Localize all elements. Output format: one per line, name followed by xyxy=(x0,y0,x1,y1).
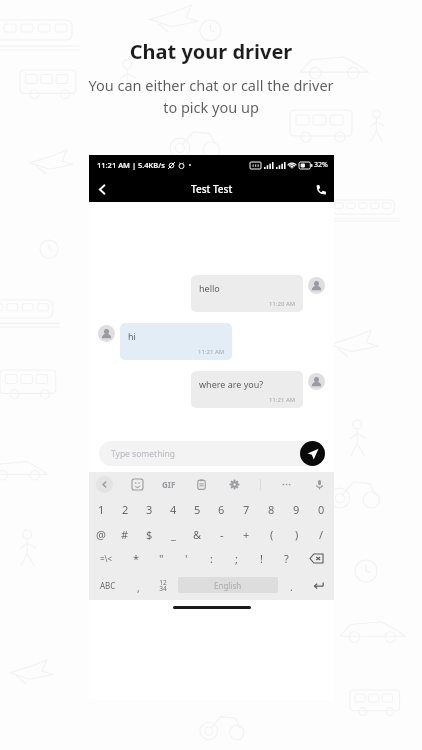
staticText: Chat your driver xyxy=(0,38,422,65)
staticText: # xyxy=(121,527,129,542)
button[interactable]: 4 xyxy=(161,496,185,522)
button[interactable]: # xyxy=(113,522,137,546)
button[interactable]: 1 xyxy=(89,496,113,522)
button[interactable]: : xyxy=(199,546,224,570)
staticText: ! xyxy=(260,551,263,566)
staticText: where are you? xyxy=(199,378,264,390)
staticText: " xyxy=(159,551,164,566)
button[interactable]: hi xyxy=(120,323,232,360)
button[interactable]: Clipboard xyxy=(194,477,209,492)
staticText: ( xyxy=(270,527,274,542)
staticText: ABC xyxy=(100,580,116,591)
staticText: Type something xyxy=(111,448,176,460)
staticText: ' xyxy=(185,551,188,566)
staticText: 11:20 AM xyxy=(269,300,296,308)
button[interactable]: ! xyxy=(249,546,274,570)
staticText: 9 xyxy=(293,502,300,517)
button[interactable]: _ xyxy=(161,522,185,546)
staticText: $ xyxy=(146,527,153,542)
staticText: + xyxy=(243,527,250,542)
staticText: hello xyxy=(199,282,220,294)
button[interactable]: * xyxy=(124,546,149,570)
button[interactable]: Collapse toolbar xyxy=(96,476,113,493)
staticText: , xyxy=(137,581,140,595)
button[interactable]: Stickers xyxy=(130,477,145,492)
button[interactable]: Call xyxy=(308,176,334,202)
staticText: & xyxy=(193,527,202,542)
button[interactable]: =\< xyxy=(89,546,124,570)
button[interactable]: English xyxy=(178,577,278,593)
staticText: 2 xyxy=(122,502,129,517)
button[interactable]: Backspace xyxy=(299,546,334,570)
button[interactable]: 2 xyxy=(113,496,137,522)
button[interactable]: $ xyxy=(137,522,161,546)
button[interactable]: 3 xyxy=(137,496,161,522)
button[interactable]: Type something xyxy=(99,441,324,466)
button[interactable]: hello xyxy=(191,275,303,312)
staticText: 6 xyxy=(218,502,225,517)
button[interactable]: " xyxy=(149,546,174,570)
staticText: 11:21 AM xyxy=(269,396,296,404)
button[interactable]: / xyxy=(309,522,334,546)
button[interactable]: GIF xyxy=(162,479,176,490)
button[interactable]: + xyxy=(234,522,259,546)
button[interactable]: Voice input xyxy=(312,477,327,492)
button[interactable]: ? xyxy=(274,546,299,570)
staticText: 32% xyxy=(314,160,328,170)
staticText: Test Test xyxy=(191,182,233,196)
button[interactable]: ' xyxy=(174,546,199,570)
staticText: You can either chat or call the driver t… xyxy=(26,75,396,117)
button[interactable]: , xyxy=(127,570,149,600)
staticText: 3 xyxy=(146,502,153,517)
button[interactable]: ( xyxy=(259,522,284,546)
button[interactable]: ) xyxy=(284,522,309,546)
staticText: - xyxy=(220,527,224,542)
staticText: _ xyxy=(171,527,176,542)
staticText: @ xyxy=(96,527,106,542)
button[interactable]: Back xyxy=(89,176,115,202)
button[interactable]: 9 xyxy=(284,496,309,522)
button[interactable]: 7 xyxy=(234,496,259,522)
staticText: 11:21 AM | 5.4KB/s xyxy=(97,160,165,170)
staticText: 5 xyxy=(194,502,201,517)
button[interactable]: Settings xyxy=(227,477,242,492)
button[interactable]: Enter xyxy=(302,570,334,600)
staticText: ? xyxy=(284,551,289,566)
staticText: 4 xyxy=(170,502,177,517)
staticText: hi xyxy=(128,330,136,342)
staticText: 8 xyxy=(268,502,275,517)
staticText: GIF xyxy=(162,479,176,490)
button[interactable]: @ xyxy=(89,522,113,546)
button[interactable]: & xyxy=(185,522,209,546)
button[interactable]: 0 xyxy=(309,496,334,522)
button[interactable]: More options xyxy=(279,477,294,492)
button[interactable]: where are you? xyxy=(191,371,303,408)
button[interactable]: 12 34 xyxy=(149,570,176,600)
staticText: * xyxy=(133,551,140,566)
staticText: . xyxy=(290,580,293,594)
staticText: 0 xyxy=(318,502,325,517)
staticText: 7 xyxy=(243,502,250,517)
staticText: : xyxy=(210,551,213,566)
staticText: ) xyxy=(295,527,299,542)
staticText: 1 xyxy=(98,502,105,517)
button[interactable]: . xyxy=(280,570,302,600)
button[interactable]: 5 xyxy=(185,496,209,522)
button[interactable]: 8 xyxy=(259,496,284,522)
staticText: 11:21 AM xyxy=(198,348,225,356)
button[interactable]: 6 xyxy=(209,496,234,522)
staticText: English xyxy=(214,580,242,591)
staticText: =\< xyxy=(100,553,113,564)
staticText: 12 34 xyxy=(159,578,167,593)
button[interactable]: - xyxy=(209,522,234,546)
button[interactable]: ; xyxy=(224,546,249,570)
button[interactable]: Send xyxy=(300,441,325,466)
staticText: / xyxy=(319,527,324,542)
staticText: ; xyxy=(235,551,238,566)
button[interactable]: ABC xyxy=(89,570,127,600)
